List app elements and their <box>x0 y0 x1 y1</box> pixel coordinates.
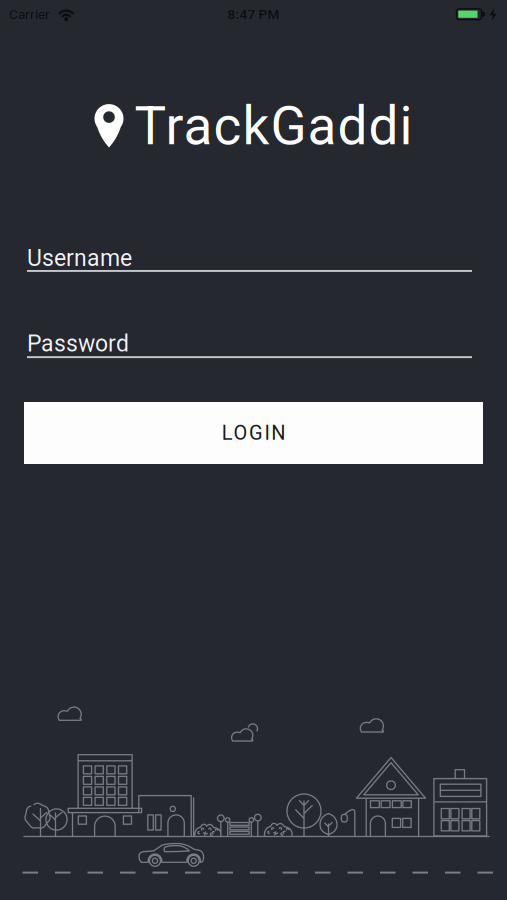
staticText: TrackGaddi <box>134 95 412 157</box>
button[interactable]: Password <box>27 330 472 358</box>
staticText: Carrier <box>9 6 50 22</box>
button[interactable]: Username <box>27 245 472 273</box>
staticText: Username <box>27 245 132 272</box>
button[interactable]: LOGIN <box>24 402 483 464</box>
staticText: 8:47 PM <box>227 6 279 22</box>
staticText: LOGIN <box>222 421 285 445</box>
staticText: Password <box>27 330 129 357</box>
